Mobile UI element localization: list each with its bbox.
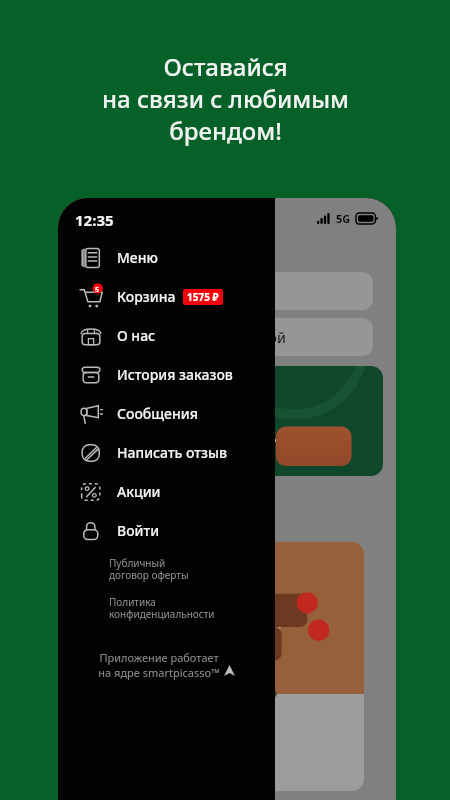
staticText: История заказов (117, 365, 233, 384)
button[interactable]: Новый Уренгой (74, 318, 373, 356)
staticText: Оставайся на связи с любимым брендом! (102, 50, 349, 147)
button[interactable]: Open menu (74, 238, 100, 264)
staticText: на доставку (80, 415, 210, 444)
button[interactable]: Сообщения (58, 394, 275, 433)
staticText: БЕСПЛАТНАЯ ДОСТАВКА (80, 448, 200, 462)
staticText: Шашлыки (96, 498, 172, 517)
staticText: Войти (117, 521, 160, 540)
staticText: Акции (117, 482, 161, 501)
staticText: 5G (336, 211, 351, 226)
staticText: Доставка (192, 282, 255, 301)
staticText: 12:35 (75, 210, 114, 230)
button[interactable]: Шашлыки (80, 490, 188, 525)
button[interactable]: История заказов (58, 355, 275, 394)
staticText: Скидка 10% (80, 386, 208, 415)
button[interactable]: Доставка (74, 272, 373, 310)
staticText: Политика конфиденциальности (109, 595, 215, 621)
button[interactable]: Войти (58, 511, 275, 550)
button[interactable]: О нас (58, 316, 275, 355)
staticText: Приложение работает на ядре smartpicasso… (98, 650, 220, 680)
button[interactable]: Написать отзыв (58, 433, 275, 472)
button[interactable]: Скидка 10% (68, 366, 383, 476)
staticText: Меню (117, 248, 158, 267)
button[interactable]: Баранина ребра (80, 542, 364, 791)
staticText: Корзина (117, 287, 176, 306)
staticText: О нас (117, 326, 156, 345)
staticText: Сообщения (117, 404, 198, 423)
staticText: 1575 ₽ (187, 290, 219, 304)
button[interactable]: Публичный договор оферты (109, 556, 189, 582)
staticText: 5 (95, 285, 100, 295)
button[interactable]: Акции (58, 472, 275, 511)
staticText: Публичный договор оферты (109, 556, 189, 582)
staticText: Написать отзыв (117, 443, 227, 462)
button[interactable]: Меню (58, 238, 275, 277)
button[interactable]: Политика конфиденциальности (109, 595, 215, 621)
staticText: Новый Уренгой (178, 328, 286, 347)
button[interactable]: 5 (58, 277, 275, 316)
